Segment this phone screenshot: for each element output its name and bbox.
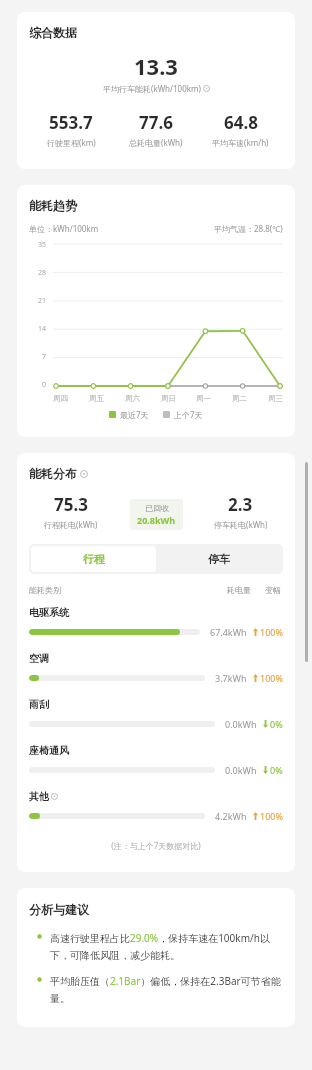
- staticText: 0: [42, 380, 47, 390]
- staticText: 周一: [196, 394, 211, 403]
- staticText: 28: [38, 268, 47, 278]
- staticText: 平均车速(km/h): [212, 137, 269, 148]
- staticText: 64.8: [224, 111, 258, 134]
- staticText: 周五: [89, 394, 104, 403]
- button[interactable]: 其他: [29, 790, 283, 836]
- button[interactable]: 座椅通风: [29, 744, 283, 790]
- staticText: 0%: [270, 764, 283, 776]
- staticText: 100%: [260, 672, 283, 684]
- staticText: 单位：kWh/100km: [29, 223, 99, 234]
- staticText: 3.7kWh: [215, 672, 247, 684]
- staticText: 周二: [232, 394, 247, 403]
- staticText: 最近7天: [120, 409, 149, 420]
- staticText: 35: [38, 240, 47, 250]
- staticText: 周日: [161, 394, 176, 403]
- staticText: 平均胎压值（2.1Bar）偏低，保持在2.3Bar可节省能量。: [50, 974, 283, 1005]
- staticText: 雨刮: [29, 698, 49, 711]
- staticText: 分析与建议: [29, 902, 89, 917]
- staticText: 其他: [29, 790, 49, 803]
- staticText: 变幅: [265, 585, 281, 595]
- staticText: 高速行驶里程占比29.0%，保持车速在100km/h以下，可降低风阻，减少能耗。: [50, 931, 283, 962]
- staticText: 100%: [260, 810, 283, 822]
- staticText: 77.6: [139, 111, 173, 134]
- staticText: 14: [38, 324, 47, 334]
- staticText: 周六: [125, 394, 140, 403]
- staticText: 0%: [270, 718, 283, 730]
- staticText: 20.8kWh: [137, 514, 176, 526]
- staticText: 0.0kWh: [225, 764, 257, 776]
- staticText: 21: [38, 296, 47, 306]
- staticText: 已回收: [145, 503, 169, 513]
- staticText: 2.3: [228, 493, 253, 516]
- staticText: 行驶里程(km): [47, 137, 96, 148]
- button[interactable]: 行程: [31, 546, 156, 572]
- staticText: 能耗分布: [29, 466, 77, 481]
- staticText: 553.7: [49, 111, 93, 134]
- staticText: 周三: [268, 394, 283, 403]
- staticText: 75.3: [54, 493, 88, 516]
- staticText: 停车: [208, 552, 230, 566]
- staticText: 座椅通风: [29, 744, 69, 757]
- staticText: 能耗类别: [29, 585, 61, 595]
- staticText: 行程耗电(kWh): [44, 519, 98, 530]
- staticText: (注：与上个7天数据对比): [29, 840, 283, 851]
- staticText: 7: [42, 352, 47, 362]
- staticText: 平均行车能耗(kWh/100km): [103, 83, 201, 94]
- button[interactable]: 电驱系统: [29, 606, 283, 652]
- staticText: 100%: [260, 626, 283, 638]
- staticText: 电驱系统: [29, 606, 69, 619]
- staticText: 平均气温：28.8(℃): [214, 223, 283, 234]
- staticText: 能耗趋势: [29, 198, 77, 213]
- staticText: 停车耗电(kWh): [214, 519, 268, 530]
- button[interactable]: 空调: [29, 652, 283, 698]
- staticText: 总耗电量(kWh): [129, 137, 183, 148]
- staticText: 4.2kWh: [215, 810, 247, 822]
- staticText: 0.0kWh: [225, 718, 257, 730]
- staticText: 耗电量: [227, 585, 251, 595]
- staticText: 周四: [53, 394, 68, 403]
- button[interactable]: 雨刮: [29, 698, 283, 744]
- staticText: 13.3: [134, 51, 178, 81]
- staticText: 行程: [83, 552, 105, 566]
- staticText: 空调: [29, 652, 49, 665]
- button[interactable]: 停车: [156, 546, 281, 572]
- staticText: 67.4kWh: [210, 626, 247, 638]
- staticText: 上个7天: [174, 409, 203, 420]
- staticText: 综合数据: [29, 25, 77, 40]
